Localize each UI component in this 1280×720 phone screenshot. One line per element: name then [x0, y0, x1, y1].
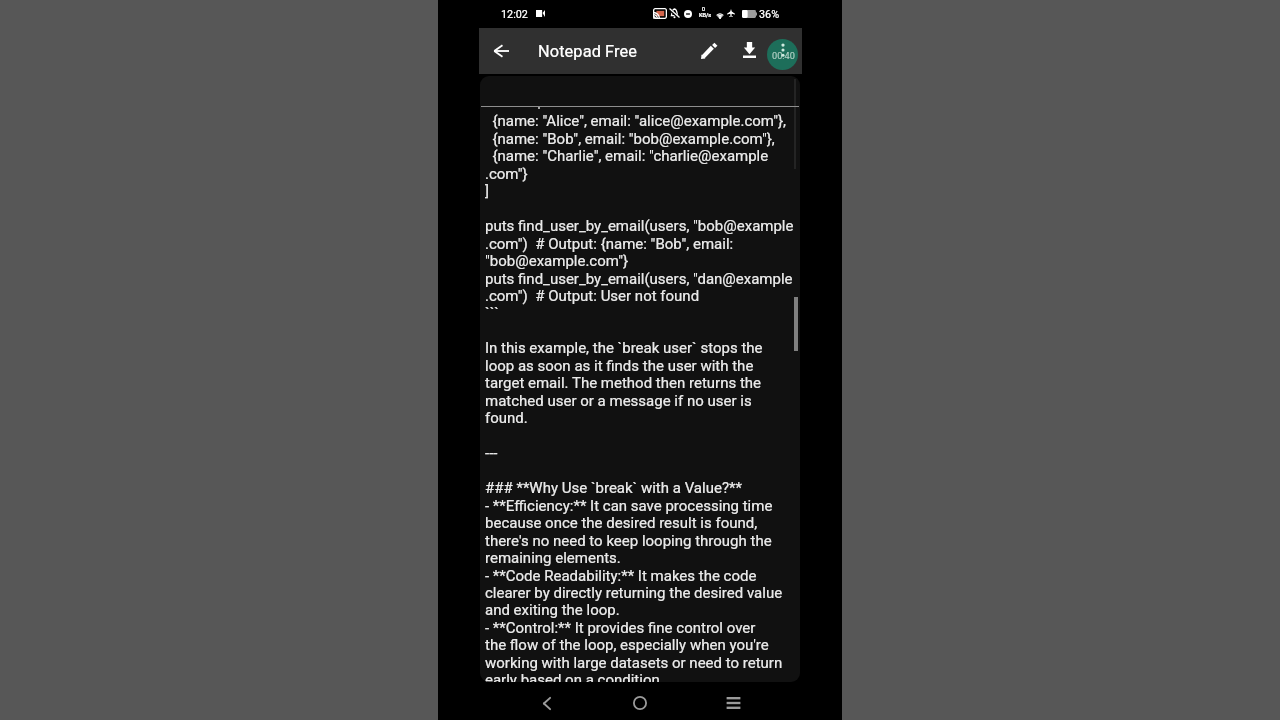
- staticText: found.: [485, 409, 528, 427]
- staticText: Notepad Free: [538, 42, 638, 61]
- staticText: - **Control:** It provides fine control …: [485, 619, 756, 637]
- staticText: matched user or a message if no user is: [485, 392, 752, 410]
- staticText: - **Code Readability:** It makes the cod…: [485, 567, 757, 585]
- staticText: 12:02: [501, 8, 528, 21]
- staticText: {name: "Bob", email: "bob@example.com"},: [485, 130, 775, 148]
- staticText: ]: [485, 182, 489, 200]
- staticText: ### **Why Use `break` with a Value?**: [485, 479, 742, 497]
- button[interactable]: Navigate up: [485, 35, 517, 67]
- button[interactable]: Home: [620, 683, 660, 720]
- staticText: ```: [485, 304, 499, 322]
- staticText: puts find_user_by_email(users, "dan@exam…: [485, 270, 793, 288]
- staticText: and exiting the loop.: [485, 601, 620, 619]
- staticText: KB/s: [699, 12, 712, 19]
- staticText: - **Efficiency:** It can save processing…: [485, 497, 773, 515]
- staticText: 0: [702, 6, 705, 12]
- button[interactable]: More options: [766, 38, 798, 70]
- staticText: 00:40: [772, 50, 795, 61]
- button[interactable]: Recent apps: [713, 683, 753, 720]
- staticText: remaining elements.: [485, 549, 621, 567]
- staticText: puts find_user_by_email(users, "bob@exam…: [485, 217, 794, 235]
- staticText: .com") # Output: {name: "Bob", email:: [485, 235, 734, 253]
- staticText: early based on a condition.: [485, 671, 664, 682]
- staticText: {name: "Alice", email: "alice@example.co…: [485, 112, 787, 130]
- staticText: .com") # Output: User not found: [485, 287, 700, 305]
- staticText: the flow of the loop, especially when yo…: [485, 636, 769, 654]
- staticText: clearer by directly returning the desire…: [485, 584, 783, 602]
- staticText: ---: [485, 444, 498, 462]
- staticText: In this example, the `break user` stops …: [485, 339, 763, 357]
- staticText: "bob@example.com"}: [485, 252, 629, 270]
- staticText: working with large datasets or need to r…: [485, 654, 783, 672]
- staticText: .com"}: [485, 165, 528, 183]
- staticText: {name: "Charlie", email: "charlie@exampl…: [485, 147, 769, 165]
- staticText: loop as soon as it finds the user with t…: [485, 357, 754, 375]
- staticText: 36%: [759, 8, 780, 21]
- staticText: there's no need to keep looping through …: [485, 532, 772, 550]
- button[interactable]: Back: [527, 683, 567, 720]
- button[interactable]: Edit: [693, 35, 725, 67]
- staticText: target email. The method then returns th…: [485, 374, 762, 392]
- button[interactable]: Download: [733, 34, 765, 66]
- staticText: because once the desired result is found…: [485, 514, 758, 532]
